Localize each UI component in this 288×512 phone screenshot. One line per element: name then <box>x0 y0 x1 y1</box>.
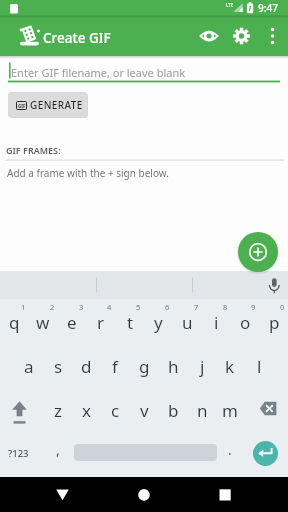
staticText: 8 <box>223 302 228 312</box>
button[interactable]: v <box>130 395 158 425</box>
button[interactable]: f <box>101 351 129 381</box>
staticText: z <box>54 399 62 422</box>
button[interactable]: . <box>220 439 240 459</box>
staticText: e <box>67 311 77 334</box>
staticText: j <box>200 355 205 378</box>
button[interactable]: o <box>231 307 259 337</box>
button[interactable]: h <box>159 351 187 381</box>
button[interactable]: w <box>29 307 57 337</box>
button[interactable]: t <box>116 307 144 337</box>
staticText: y <box>154 311 163 334</box>
staticText: 4 <box>107 302 112 312</box>
button[interactable]: z <box>44 395 72 425</box>
button[interactable] <box>46 479 79 510</box>
button[interactable]: q <box>0 307 28 337</box>
staticText: 7 <box>194 302 199 312</box>
staticText: a <box>24 355 34 378</box>
button[interactable]: c <box>101 395 129 425</box>
button[interactable] <box>2 394 40 426</box>
staticText: u <box>182 311 193 334</box>
button[interactable] <box>262 24 283 48</box>
staticText: o <box>240 311 251 334</box>
staticText: 9:47 <box>258 1 278 15</box>
button[interactable] <box>250 394 286 426</box>
button[interactable]: u <box>173 307 201 337</box>
staticText: 0 <box>280 302 285 312</box>
staticText: 5 <box>136 302 141 312</box>
staticText: p <box>269 311 280 334</box>
button[interactable]: p <box>260 307 288 337</box>
staticText: t <box>127 311 134 334</box>
staticText: n <box>197 399 208 422</box>
button[interactable] <box>253 441 278 466</box>
staticText: , <box>56 440 60 459</box>
button[interactable]: i <box>202 307 230 337</box>
staticText: Add a frame with the + sign below. <box>7 166 169 180</box>
button[interactable]: g <box>130 351 158 381</box>
staticText: w <box>36 311 50 334</box>
button[interactable]: GIF <box>8 92 87 117</box>
button[interactable]: b <box>159 395 187 425</box>
staticText: 3 <box>79 302 84 312</box>
button[interactable] <box>209 479 242 510</box>
button[interactable]: k <box>216 351 244 381</box>
button[interactable]: , <box>48 439 68 459</box>
staticText: v <box>140 399 149 422</box>
staticText: q <box>9 311 20 334</box>
staticText: Create GIF <box>43 29 111 47</box>
staticText: 6 <box>165 302 170 312</box>
button[interactable] <box>197 24 221 48</box>
button[interactable] <box>229 24 253 48</box>
button[interactable]: r <box>87 307 115 337</box>
button[interactable]: j <box>188 351 216 381</box>
staticText: r <box>97 311 105 334</box>
staticText: i <box>214 311 219 334</box>
button[interactable]: x <box>72 395 100 425</box>
staticText: LTE <box>226 2 234 8</box>
button[interactable]: n <box>188 395 216 425</box>
button[interactable]: e <box>58 307 86 337</box>
staticText: 9 <box>251 302 256 312</box>
button[interactable]: ?123 <box>1 443 35 463</box>
staticText: GENERATE <box>30 98 83 112</box>
button[interactable]: a <box>15 351 43 381</box>
staticText: l <box>257 355 262 378</box>
staticText: c <box>111 399 120 422</box>
button[interactable]: Enter GIF filename, or leave blank <box>11 65 186 80</box>
staticText: x <box>82 399 91 422</box>
staticText: . <box>228 440 232 459</box>
button[interactable]: l <box>245 351 273 381</box>
button[interactable]: d <box>72 351 100 381</box>
staticText: GIF <box>18 103 26 109</box>
staticText: 1 <box>21 302 26 312</box>
staticText: d <box>81 355 92 378</box>
button[interactable]: s <box>44 351 72 381</box>
button[interactable]: m <box>216 395 244 425</box>
staticText: 2 <box>50 302 55 312</box>
staticText: k <box>225 355 235 378</box>
button[interactable] <box>127 479 160 510</box>
staticText: ?123 <box>8 447 29 460</box>
staticText: f <box>112 355 118 378</box>
staticText: m <box>222 399 238 422</box>
staticText: s <box>54 355 63 378</box>
staticText: b <box>168 399 179 422</box>
staticText: g <box>139 355 150 378</box>
button[interactable]: y <box>144 307 172 337</box>
button[interactable] <box>238 232 278 272</box>
staticText: h <box>168 355 179 378</box>
staticText: GIF FRAMES: <box>6 144 61 156</box>
